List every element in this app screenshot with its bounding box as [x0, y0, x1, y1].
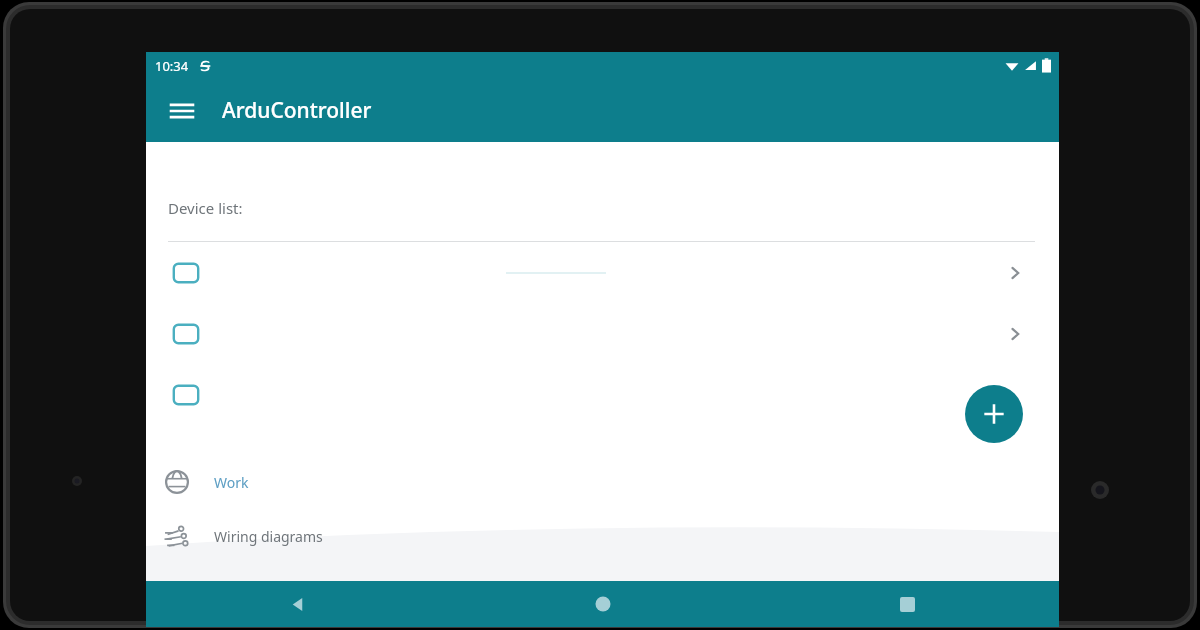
button[interactable]: Add device: [965, 385, 1023, 443]
button[interactable]: [146, 242, 1059, 303]
staticText: Wiring diagrams: [214, 527, 323, 546]
button[interactable]: Wiring diagrams: [146, 513, 1059, 559]
button[interactable]: [146, 303, 1059, 364]
staticText: Device list:: [168, 198, 243, 218]
button[interactable]: Recent apps: [755, 581, 1059, 627]
staticText: Work: [214, 473, 249, 492]
staticText: 10:34: [155, 57, 189, 75]
button[interactable]: Home: [451, 581, 755, 627]
button[interactable]: Work: [146, 459, 1059, 505]
button[interactable]: [146, 364, 1059, 425]
button[interactable]: Open navigation menu: [161, 90, 203, 132]
staticText: ArduController: [222, 96, 372, 125]
button[interactable]: Back: [146, 581, 451, 627]
